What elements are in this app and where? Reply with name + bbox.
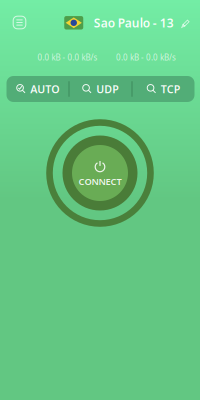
staticText: TCP (161, 82, 181, 96)
button[interactable]: AUTO (6, 76, 68, 102)
staticText: Sao Paulo - 13 (94, 15, 174, 31)
staticText: 0.0 kB - 0.0 kB/s (116, 52, 176, 63)
button[interactable]: UDP (69, 76, 131, 102)
staticText: CONNECT (78, 175, 121, 188)
button[interactable]: Sao Paulo - 13 (64, 11, 191, 35)
button[interactable]: TCP (132, 76, 194, 102)
staticText: UDP (96, 82, 119, 96)
button[interactable]: Connect (44, 117, 156, 229)
button[interactable]: Menu (5, 8, 33, 36)
staticText: AUTO (30, 82, 59, 96)
staticText: 0.0 kB - 0.0 kB/s (37, 52, 97, 63)
